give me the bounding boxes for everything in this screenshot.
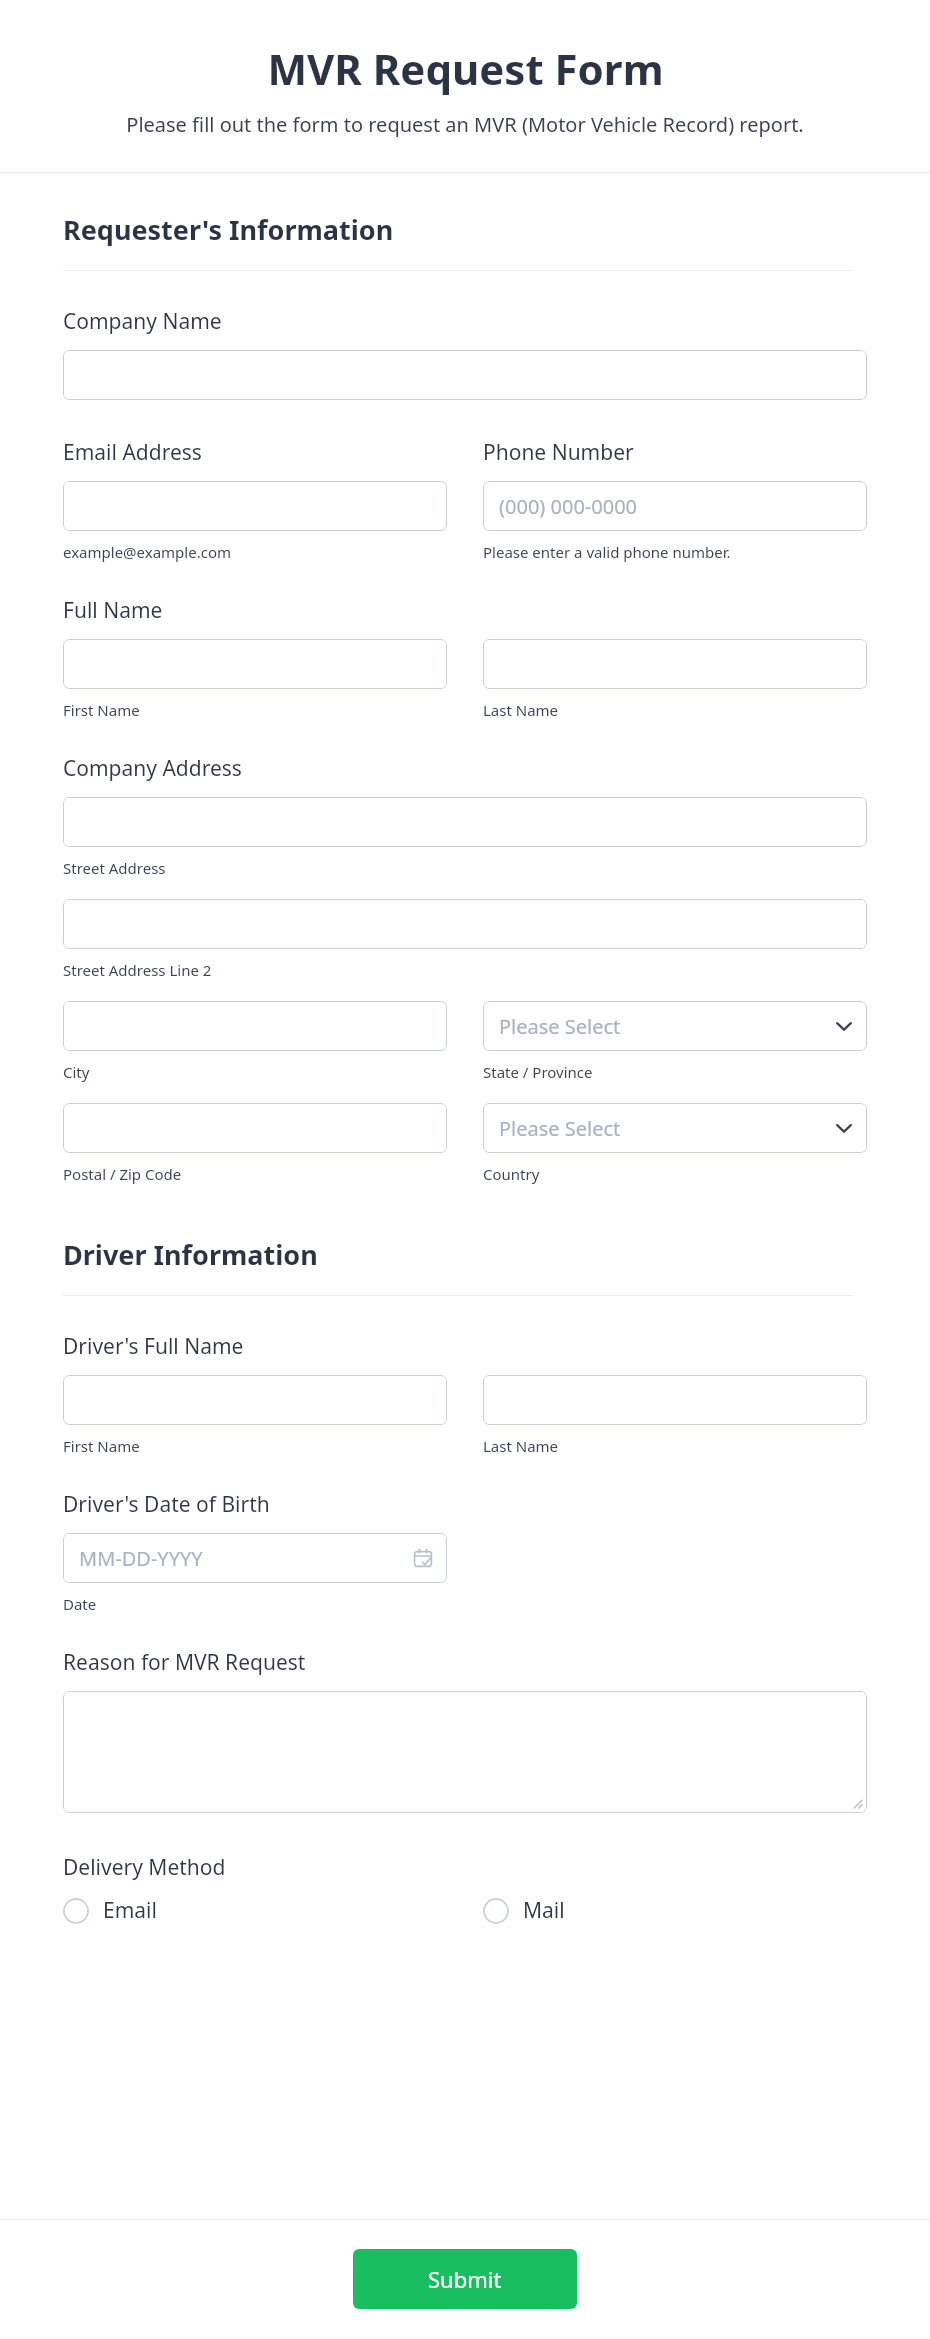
button[interactable]: [483, 639, 867, 689]
staticText: MVR Request Form: [267, 40, 664, 97]
staticText: (000) 000-0000: [499, 493, 638, 520]
button[interactable]: MM-DD-YYYY: [63, 1533, 447, 1583]
button[interactable]: [63, 1691, 867, 1813]
staticText: Please Select: [499, 1115, 621, 1142]
staticText: Street Address Line 2: [63, 960, 212, 980]
staticText: Last Name: [483, 700, 559, 720]
button[interactable]: [63, 1103, 447, 1153]
staticText: First Name: [63, 700, 140, 720]
staticText: Mail: [523, 1896, 565, 1925]
button[interactable]: [63, 899, 867, 949]
staticText: City: [63, 1062, 90, 1082]
button[interactable]: Please Select: [483, 1103, 867, 1153]
staticText: Please Select: [499, 1013, 621, 1040]
button[interactable]: [63, 350, 867, 400]
staticText: example@example.com: [63, 542, 231, 562]
staticText: Please fill out the form to request an M…: [126, 111, 804, 138]
button[interactable]: [63, 797, 867, 847]
staticText: Full Name: [63, 596, 163, 625]
staticText: Last Name: [483, 1436, 559, 1456]
staticText: Postal / Zip Code: [63, 1164, 182, 1184]
staticText: Please enter a valid phone number.: [483, 542, 731, 562]
staticText: Company Name: [63, 307, 222, 336]
staticText: First Name: [63, 1436, 140, 1456]
button[interactable]: Submit: [353, 2249, 577, 2309]
staticText: Street Address: [63, 858, 166, 878]
staticText: Driver's Full Name: [63, 1332, 244, 1361]
button[interactable]: Email: [63, 1896, 447, 1925]
staticText: Date: [63, 1594, 97, 1614]
staticText: Delivery Method: [63, 1853, 226, 1882]
staticText: Email: [103, 1896, 157, 1925]
staticText: Phone Number: [483, 438, 634, 467]
button[interactable]: [483, 1375, 867, 1425]
staticText: Reason for MVR Request: [63, 1648, 306, 1677]
staticText: Driver's Date of Birth: [63, 1490, 270, 1519]
button[interactable]: [63, 1001, 447, 1051]
staticText: Company Address: [63, 754, 242, 783]
button[interactable]: Mail: [483, 1896, 867, 1925]
button[interactable]: [63, 639, 447, 689]
staticText: MM-DD-YYYY: [79, 1545, 203, 1572]
staticText: State / Province: [483, 1062, 593, 1082]
button[interactable]: (000) 000-0000: [483, 481, 867, 531]
staticText: Driver Information: [63, 1236, 318, 1273]
button[interactable]: [63, 1375, 447, 1425]
staticText: Email Address: [63, 438, 202, 467]
staticText: Requester's Information: [63, 211, 394, 248]
button[interactable]: [63, 481, 447, 531]
staticText: Submit: [428, 2264, 502, 2294]
staticText: Country: [483, 1164, 540, 1184]
button[interactable]: Please Select: [483, 1001, 867, 1051]
